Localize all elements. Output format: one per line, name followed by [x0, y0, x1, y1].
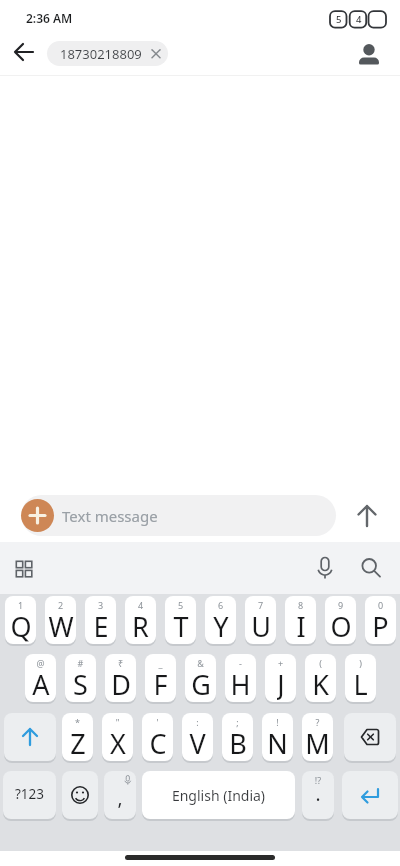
button[interactable]: 4: [125, 596, 156, 644]
button[interactable]: [309, 552, 341, 584]
button[interactable]: ₹: [105, 654, 136, 702]
button[interactable]: [4, 713, 56, 761]
staticText: +: [265, 657, 296, 670]
staticText: D: [111, 666, 131, 701]
button[interactable]: *: [62, 713, 93, 761]
staticText: N: [267, 725, 288, 760]
button[interactable]: ): [345, 654, 376, 702]
button[interactable]: [62, 771, 98, 819]
button[interactable]: 1: [5, 596, 36, 644]
button[interactable]: :: [182, 713, 213, 761]
button[interactable]: ?: [302, 713, 333, 761]
staticText: 2:36 AM: [26, 10, 86, 29]
staticText: 3: [85, 599, 116, 612]
staticText: (: [305, 657, 336, 670]
staticText: M: [305, 725, 330, 760]
button[interactable]: [355, 552, 387, 584]
staticText: Text message: [62, 506, 158, 526]
button[interactable]: ': [142, 713, 173, 761]
staticText: ': [142, 716, 173, 729]
staticText: E: [93, 608, 109, 643]
staticText: V: [189, 725, 206, 760]
staticText: W: [48, 608, 74, 643]
button[interactable]: 9: [325, 596, 356, 644]
staticText: P: [372, 608, 389, 643]
button[interactable]: [21, 499, 54, 532]
button[interactable]: ": [102, 713, 133, 761]
staticText: 8: [285, 599, 316, 612]
button[interactable]: ,: [104, 771, 136, 819]
staticText: 5: [165, 599, 196, 612]
button[interactable]: !: [262, 713, 293, 761]
staticText: *: [62, 716, 93, 729]
staticText: U: [251, 608, 271, 643]
staticText: Y: [213, 608, 229, 643]
button[interactable]: 0: [365, 596, 396, 644]
staticText: S: [73, 666, 88, 701]
staticText: 6: [205, 599, 236, 612]
staticText: C: [149, 725, 167, 760]
staticText: R: [132, 608, 149, 643]
staticText: :: [182, 716, 213, 729]
staticText: .: [302, 781, 334, 815]
staticText: 7: [245, 599, 276, 612]
staticText: Q: [10, 608, 32, 643]
button[interactable]: [342, 771, 398, 819]
staticText: T: [173, 608, 189, 643]
button[interactable]: 8: [285, 596, 316, 644]
button[interactable]: [351, 500, 383, 532]
staticText: English (India): [142, 786, 295, 808]
button[interactable]: (: [305, 654, 336, 702]
staticText: @: [25, 657, 56, 670]
staticText: Z: [70, 725, 86, 760]
staticText: ?123: [3, 785, 56, 807]
staticText: ): [345, 657, 376, 670]
button[interactable]: _: [145, 654, 176, 702]
button[interactable]: 2: [45, 596, 76, 644]
staticText: 1: [5, 599, 36, 612]
staticText: ": [102, 716, 133, 729]
button[interactable]: 18730218809: [47, 41, 168, 66]
button[interactable]: 5: [165, 596, 196, 644]
button[interactable]: [353, 37, 385, 69]
button[interactable]: 3: [85, 596, 116, 644]
button[interactable]: ;: [222, 713, 253, 761]
button[interactable]: &: [185, 654, 216, 702]
staticText: 5: [336, 13, 342, 26]
button[interactable]: 7: [245, 596, 276, 644]
staticText: ;: [222, 716, 253, 729]
staticText: K: [312, 666, 329, 701]
staticText: #: [65, 657, 96, 670]
staticText: ?: [302, 716, 333, 729]
staticText: I: [296, 608, 306, 643]
button[interactable]: Text message: [21, 495, 336, 536]
staticText: 4: [356, 13, 362, 26]
staticText: G: [191, 666, 211, 701]
staticText: 4: [125, 599, 156, 612]
button[interactable]: ?123: [3, 771, 56, 819]
staticText: F: [153, 666, 168, 701]
staticText: 2: [45, 599, 76, 612]
staticText: 18730218809: [60, 45, 142, 63]
button[interactable]: #: [65, 654, 96, 702]
staticText: ₹: [105, 657, 136, 670]
staticText: &: [185, 657, 216, 670]
button[interactable]: 6: [205, 596, 236, 644]
staticText: ,: [104, 785, 136, 815]
staticText: H: [230, 666, 251, 701]
button[interactable]: [8, 36, 40, 68]
staticText: X: [110, 725, 126, 760]
staticText: !: [262, 716, 293, 729]
button[interactable]: [344, 713, 396, 761]
staticText: O: [330, 608, 352, 643]
button[interactable]: @: [25, 654, 56, 702]
staticText: 9: [325, 599, 356, 612]
button[interactable]: -: [225, 654, 256, 702]
staticText: !?: [302, 774, 334, 788]
button[interactable]: [8, 552, 40, 584]
staticText: 0: [365, 599, 396, 612]
button[interactable]: English (India): [142, 771, 295, 819]
staticText: A: [32, 666, 50, 701]
button[interactable]: !?: [302, 771, 334, 819]
button[interactable]: +: [265, 654, 296, 702]
